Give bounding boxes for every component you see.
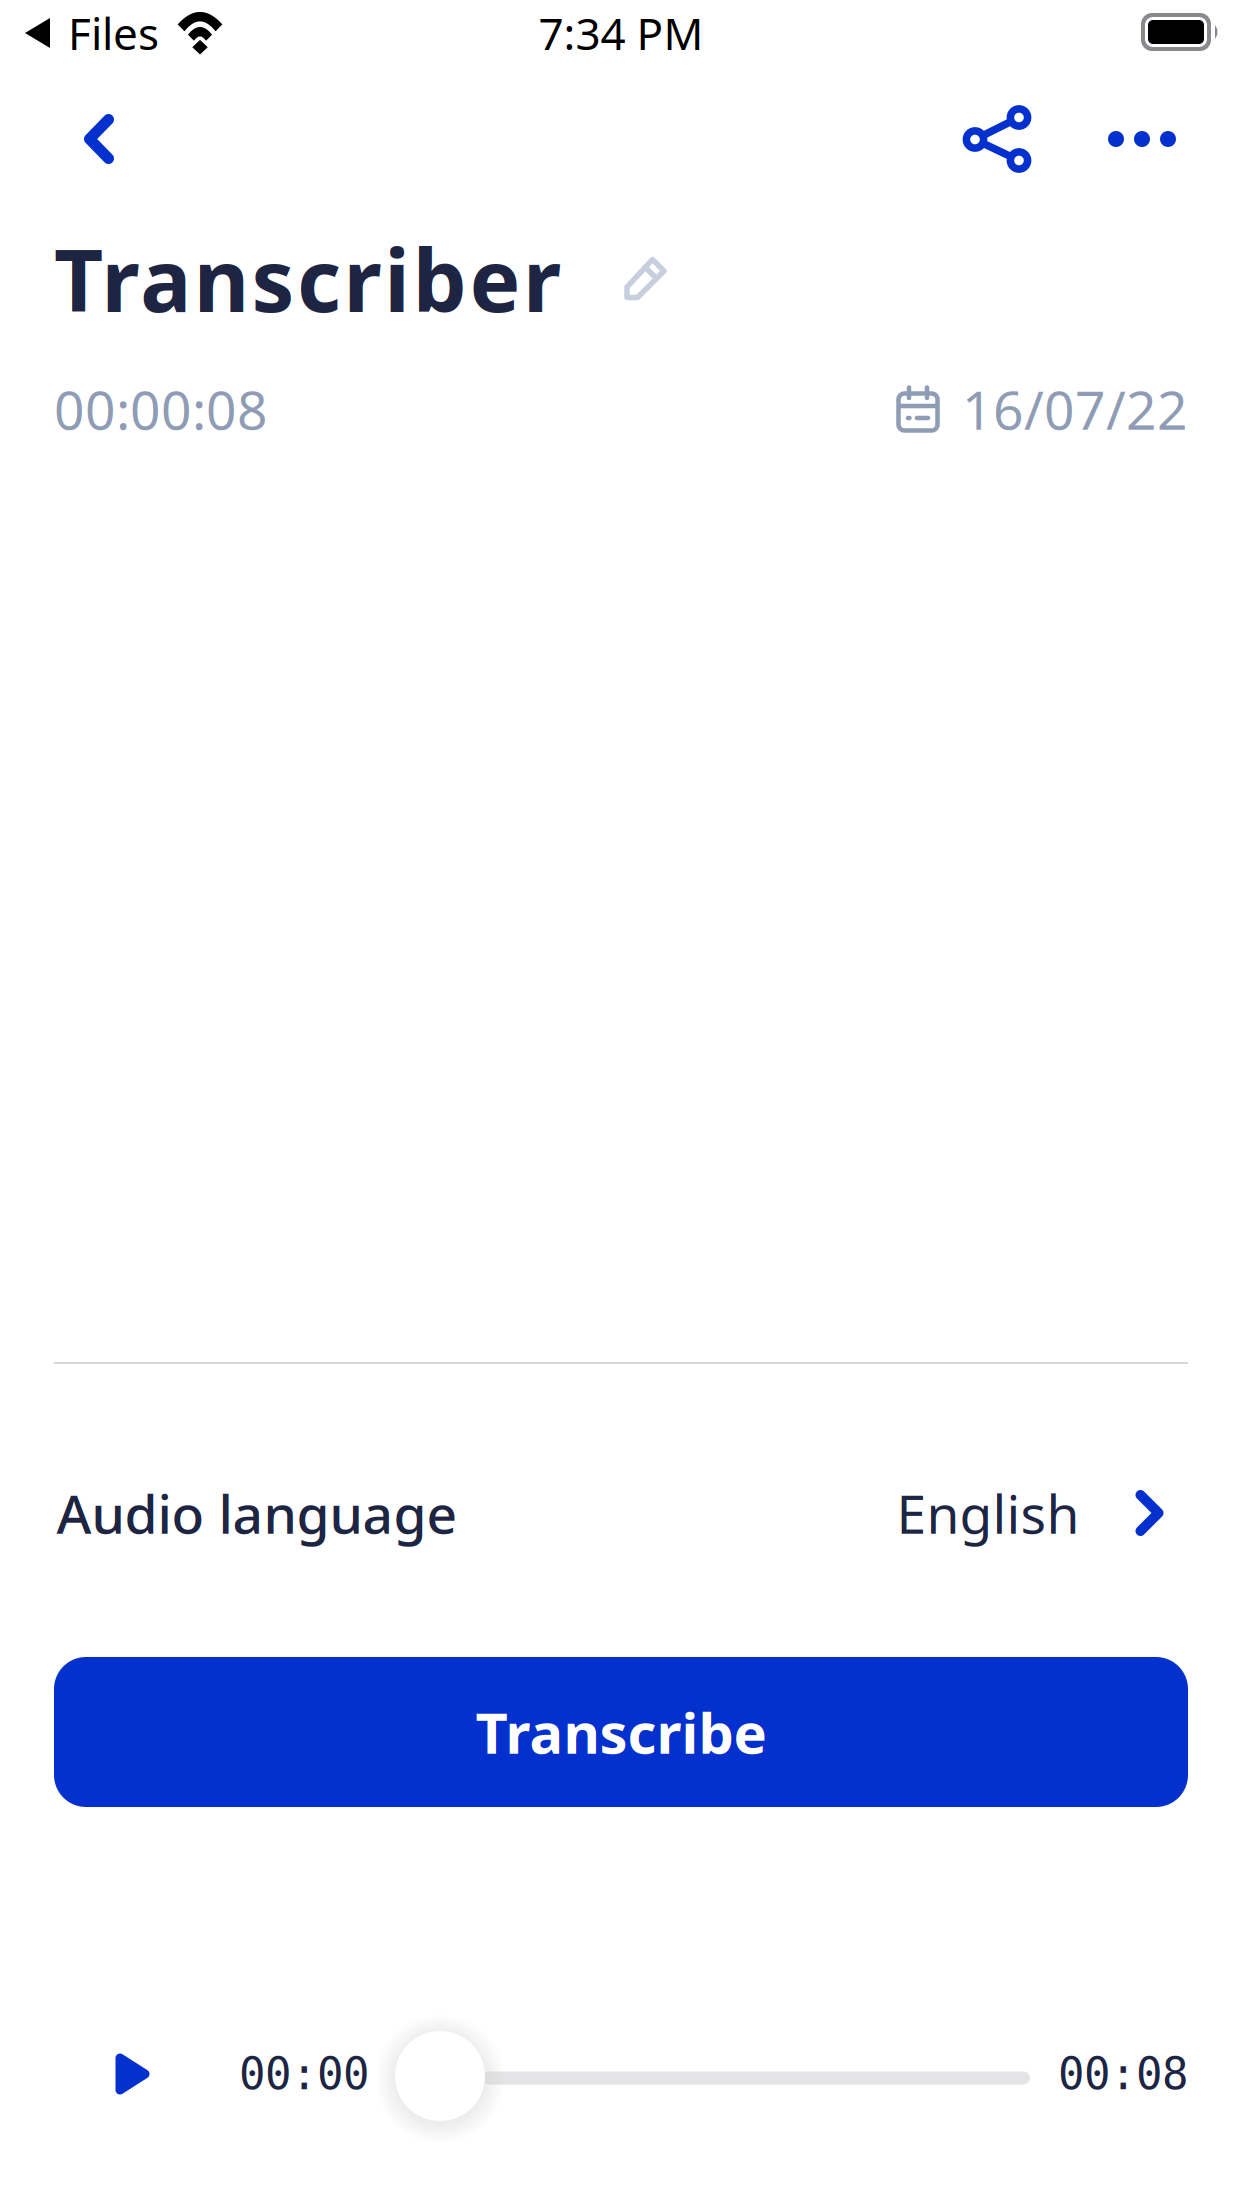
staticText: 00:08 <box>1058 2049 1188 2099</box>
staticText: Transcribe <box>475 1695 766 1769</box>
button[interactable]: Share <box>947 91 1047 187</box>
staticText: Files <box>68 4 159 62</box>
staticText: Audio language <box>56 1478 457 1548</box>
button[interactable]: Audio language <box>56 1438 1163 1588</box>
staticText: English <box>896 1478 1079 1548</box>
button[interactable]: Play <box>94 2036 170 2112</box>
button[interactable]: Rename recording <box>561 234 691 324</box>
button[interactable]: Transcribe <box>54 1657 1188 1807</box>
staticText: 00:00:08 <box>54 374 268 444</box>
staticText: 16/07/22 <box>962 374 1188 444</box>
staticText: 00:00 <box>239 2049 369 2099</box>
button[interactable]: Back <box>51 91 147 187</box>
staticText: 7:34 PM <box>538 4 703 62</box>
button[interactable]: More options <box>1092 91 1192 187</box>
staticText: Transcriber <box>54 222 561 336</box>
